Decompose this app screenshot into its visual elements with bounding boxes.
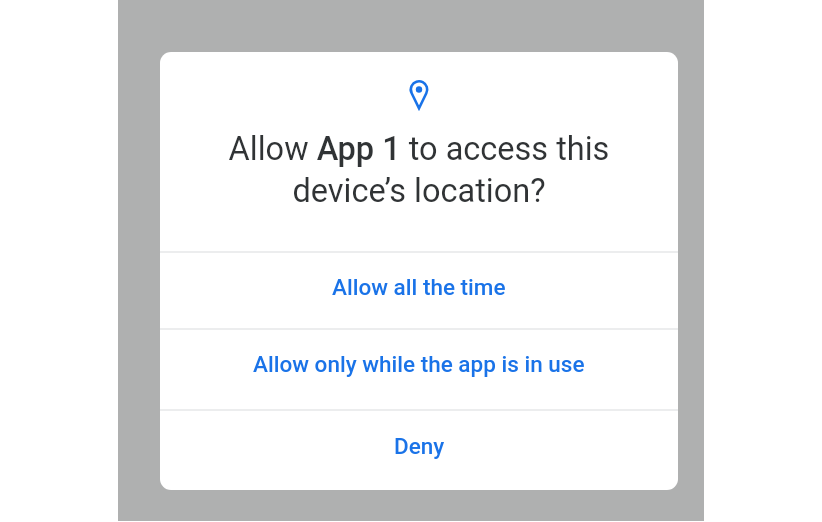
staticText: Allow all the time — [332, 274, 506, 300]
button[interactable]: Allow only while the app is in use — [160, 330, 678, 409]
button[interactable]: Deny — [160, 411, 678, 490]
button[interactable]: Allow all the time — [160, 253, 678, 328]
staticText: Allow App 1 to access this device’s loca… — [160, 130, 678, 210]
staticText: Deny — [394, 433, 445, 459]
staticText: Allow only while the app is in use — [253, 351, 585, 377]
